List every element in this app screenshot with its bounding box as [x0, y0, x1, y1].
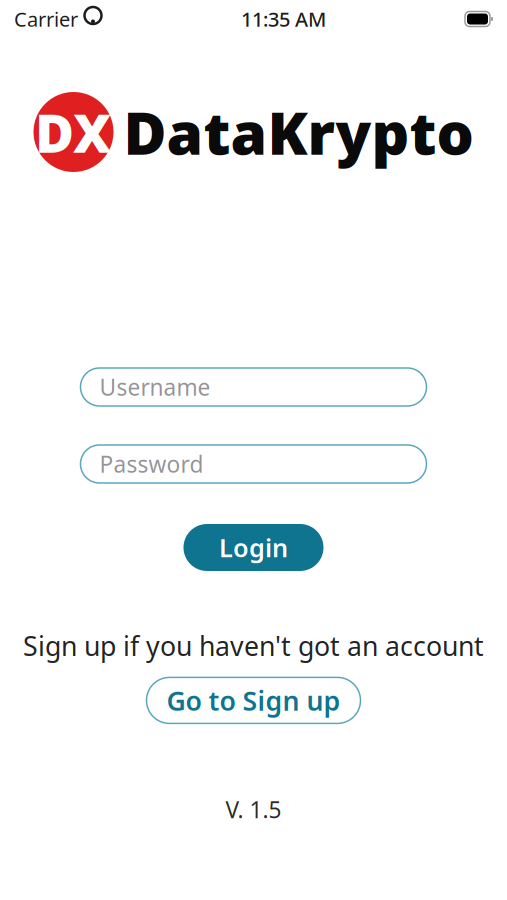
staticText: V. 1.5: [225, 794, 281, 824]
staticText: 11:35 AM: [241, 6, 326, 32]
staticText: Go to Sign up: [166, 683, 340, 718]
button[interactable]: Go to Sign up: [146, 677, 360, 723]
button[interactable]: Login: [183, 524, 323, 571]
staticText: Username: [99, 372, 210, 402]
staticText: Password: [99, 449, 203, 479]
staticText: Carrier: [14, 6, 78, 32]
staticText: DX: [35, 97, 112, 167]
staticText: DataKrypto: [123, 93, 473, 171]
staticText: Sign up if you haven't got an account: [23, 628, 484, 663]
staticText: Login: [219, 531, 288, 564]
